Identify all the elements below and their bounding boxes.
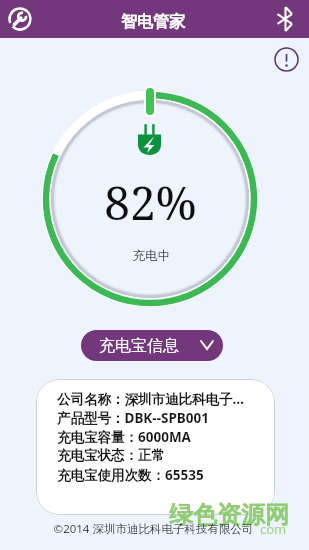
staticText: 充电宝使用次数：65535 (57, 466, 204, 485)
staticText: 充电中 (0, 248, 306, 264)
button[interactable]: 充电宝信息 (81, 330, 223, 361)
button[interactable]: 公司名称：深圳市迪比科电子… (36, 379, 275, 515)
button[interactable]: Bluetooth (272, 6, 298, 32)
staticText: 智电管家 (121, 12, 185, 32)
staticText: 产品型号：DBK--SPB001 (57, 409, 209, 428)
staticText: 充电宝信息 (99, 336, 179, 356)
staticText: 充电宝状态：正常 (57, 447, 165, 466)
staticText: 充电宝容量：6000MA (57, 428, 191, 447)
staticText: 82% (0, 171, 305, 234)
staticText: 绿色资源网 (169, 500, 289, 530)
staticText: com (260, 520, 287, 538)
button[interactable]: Settings (4, 3, 36, 35)
staticText: ©2014 深圳市迪比科电子科技有限公司 (0, 521, 308, 537)
staticText: 公司名称：深圳市迪比科电子… (57, 390, 245, 409)
button[interactable]: Information (272, 45, 300, 73)
